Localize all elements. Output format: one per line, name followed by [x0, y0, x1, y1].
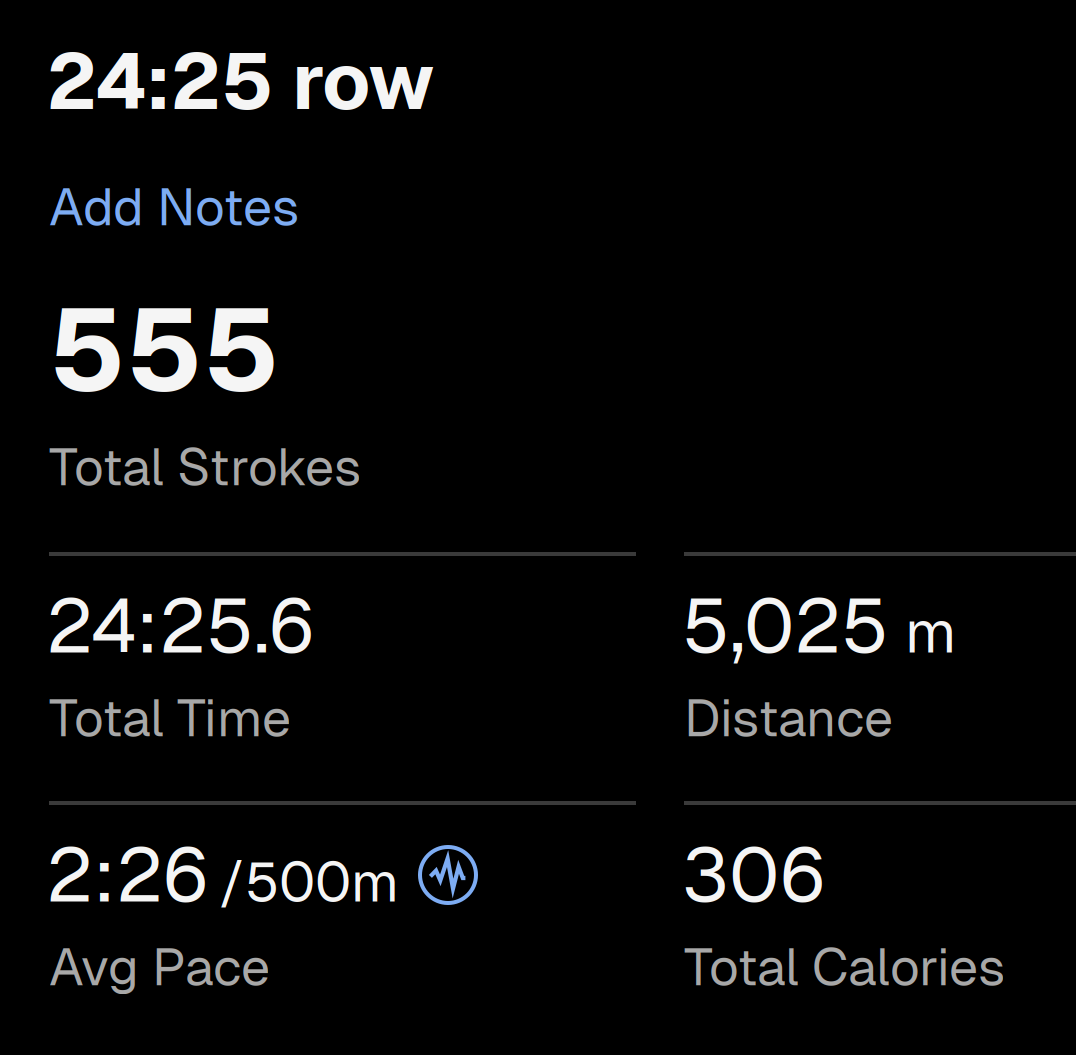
staticText: Distance	[684, 684, 893, 752]
staticText: /500m	[219, 846, 399, 917]
staticText: m	[905, 593, 956, 670]
staticText: 555	[49, 275, 280, 424]
staticText: 306	[682, 825, 826, 924]
staticText: Total Strokes	[49, 433, 361, 501]
staticText: Avg Pace	[49, 933, 270, 1001]
staticText: 24:25 row	[46, 30, 435, 132]
button[interactable]: Add Notes	[49, 173, 299, 241]
staticText: Add Notes	[49, 173, 299, 241]
staticText: Total Calories	[684, 933, 1005, 1001]
staticText: Total Time	[49, 684, 291, 752]
staticText: 2:26	[46, 825, 209, 924]
staticText: 24:25.6	[46, 576, 315, 675]
staticText: 5,025	[682, 576, 889, 675]
